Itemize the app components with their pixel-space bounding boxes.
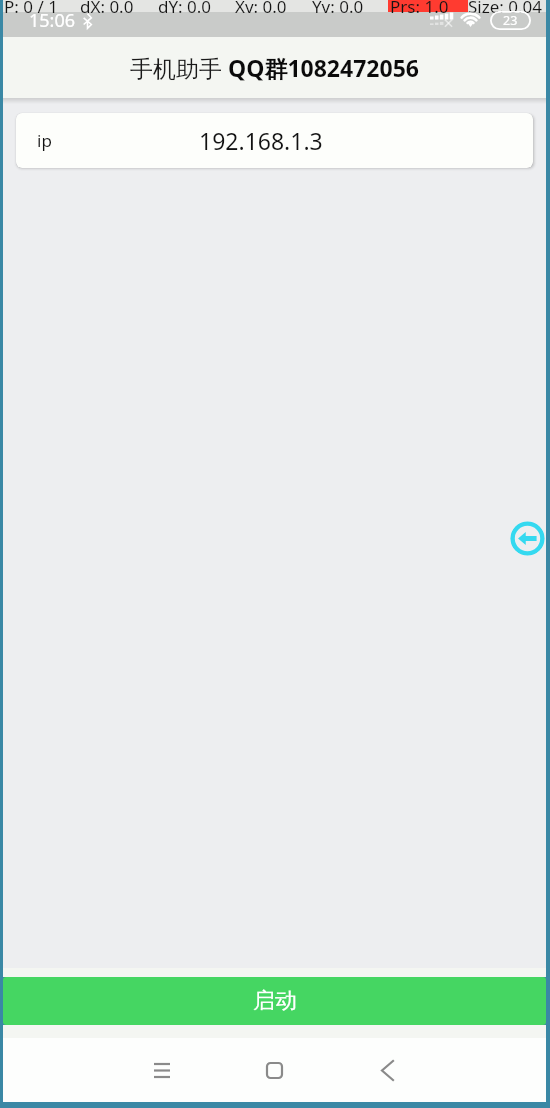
staticText: 23 <box>503 12 518 29</box>
staticText: Prs: 1.0 <box>390 0 449 17</box>
button[interactable]: Back <box>331 1038 444 1102</box>
staticText: P: 0 / 1 <box>4 0 58 17</box>
staticText: Xv: 0.0 <box>235 0 287 17</box>
staticText: dY: 0.0 <box>158 0 212 17</box>
button[interactable]: ip <box>16 113 533 168</box>
button[interactable]: 启动 <box>3 977 546 1025</box>
button[interactable]: Back <box>510 521 545 556</box>
staticText: Yv: 0.0 <box>312 0 364 17</box>
staticText: 15:06 <box>29 8 76 33</box>
button[interactable]: Home <box>218 1038 331 1102</box>
button[interactable]: Recents <box>105 1038 218 1102</box>
staticText: 192.168.1.3 <box>199 125 323 156</box>
staticText: dX: 0.0 <box>80 0 134 17</box>
staticText: 启动 <box>253 987 297 1015</box>
staticText: QQ群1082472056 <box>228 52 419 83</box>
staticText: 手机助手 <box>130 52 228 83</box>
staticText: Size: 0.04 <box>468 0 543 17</box>
staticText: ip <box>37 129 52 152</box>
